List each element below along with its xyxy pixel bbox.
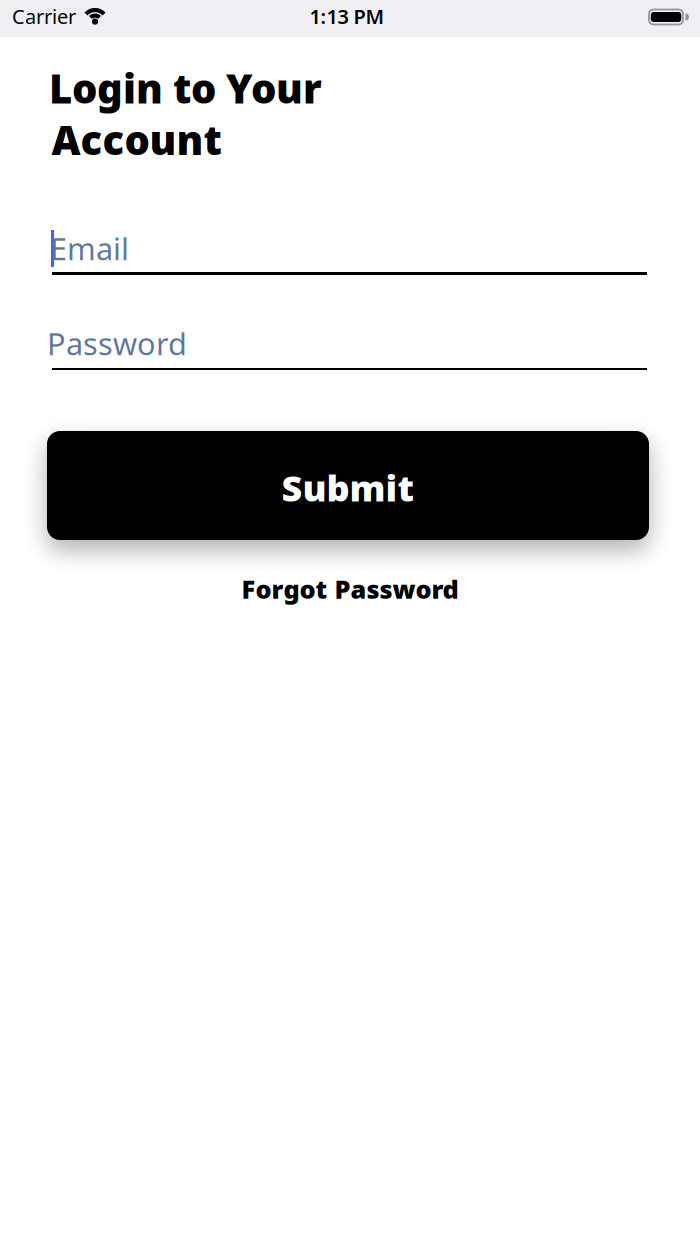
staticText: Login to Your <box>49 61 322 115</box>
staticText: Forgot Password <box>241 572 458 606</box>
staticText: 1:13 PM <box>309 3 384 30</box>
button[interactable]: Email <box>52 230 647 275</box>
button[interactable]: Password <box>52 325 647 370</box>
staticText: Account <box>51 113 221 166</box>
staticText: Password <box>47 323 187 364</box>
staticText: Email <box>50 228 129 269</box>
staticText: Submit <box>281 464 414 511</box>
button[interactable]: Forgot Password <box>241 572 458 606</box>
staticText: Carrier <box>12 3 76 30</box>
button[interactable]: Submit <box>47 431 649 540</box>
